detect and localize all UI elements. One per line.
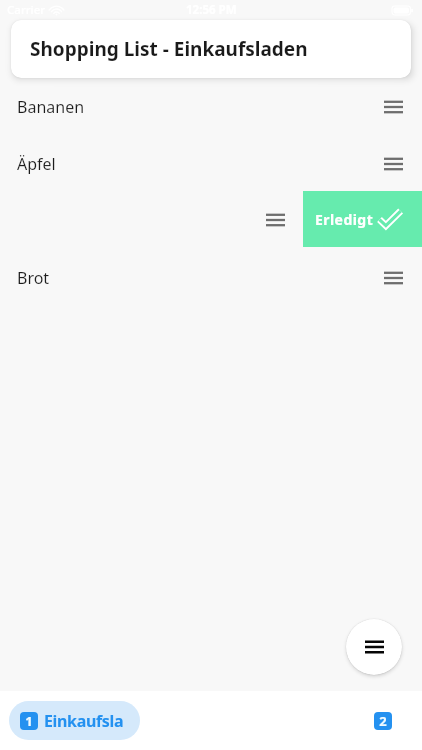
button[interactable]: 1: [9, 701, 140, 740]
button[interactable]: Äpfel: [0, 135, 422, 192]
staticText: Brot: [17, 267, 50, 289]
staticText: Äpfel: [17, 153, 56, 175]
staticText: Einkaufsla: [44, 710, 124, 732]
button[interactable]: Menu: [346, 619, 402, 675]
button[interactable]: Shopping List - Einkaufsladen: [11, 20, 411, 78]
staticText: 1: [25, 712, 33, 730]
button[interactable]: Bananen: [0, 78, 422, 135]
button[interactable]: Brot: [0, 249, 422, 306]
button[interactable]: Einkaufsliste 2: [374, 712, 392, 730]
staticText: Erledigt: [315, 210, 374, 229]
staticText: 2: [379, 712, 387, 730]
staticText: Shopping List - Einkaufsladen: [30, 36, 308, 62]
staticText: Bananen: [17, 96, 85, 118]
button[interactable]: Erledigt: [303, 191, 422, 247]
